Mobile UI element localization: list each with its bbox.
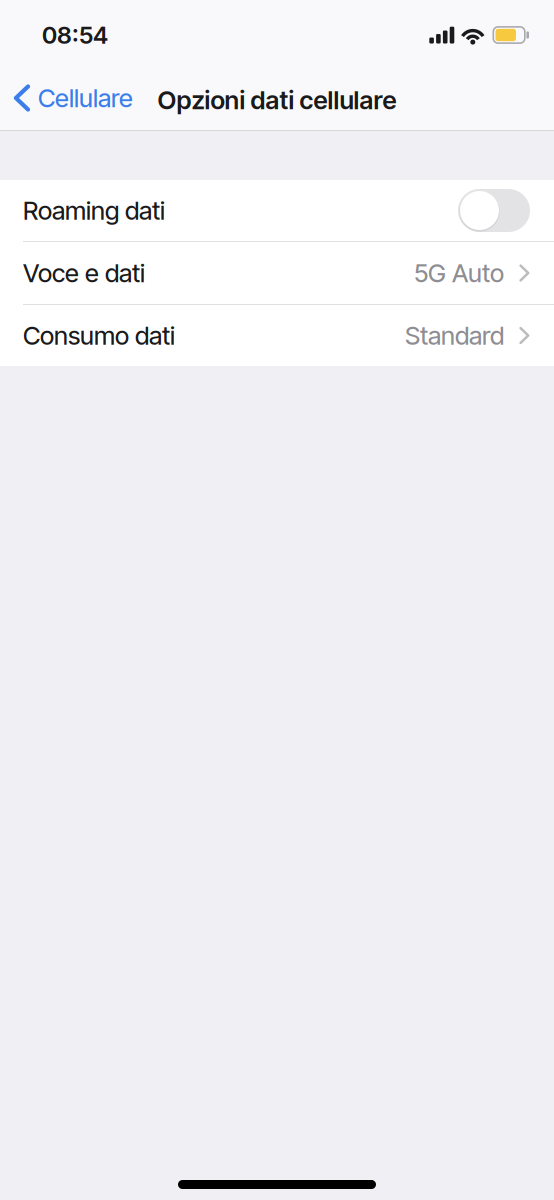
staticText: Opzioni dati cellulare [157,85,396,115]
staticText: Voce e dati [23,258,145,288]
staticText: 08:54 [42,20,108,49]
staticText: Roaming dati [23,195,165,226]
button[interactable]: Roaming dati [0,180,554,241]
staticText: Consumo dati [23,320,175,351]
staticText: Standard [405,320,504,351]
staticText: 5G Auto [414,258,504,288]
button[interactable]: Voce e dati [0,242,554,304]
staticText: Cellulare [38,83,133,113]
button[interactable]: Consumo dati [0,305,554,366]
button[interactable]: Cellulare [0,76,143,124]
